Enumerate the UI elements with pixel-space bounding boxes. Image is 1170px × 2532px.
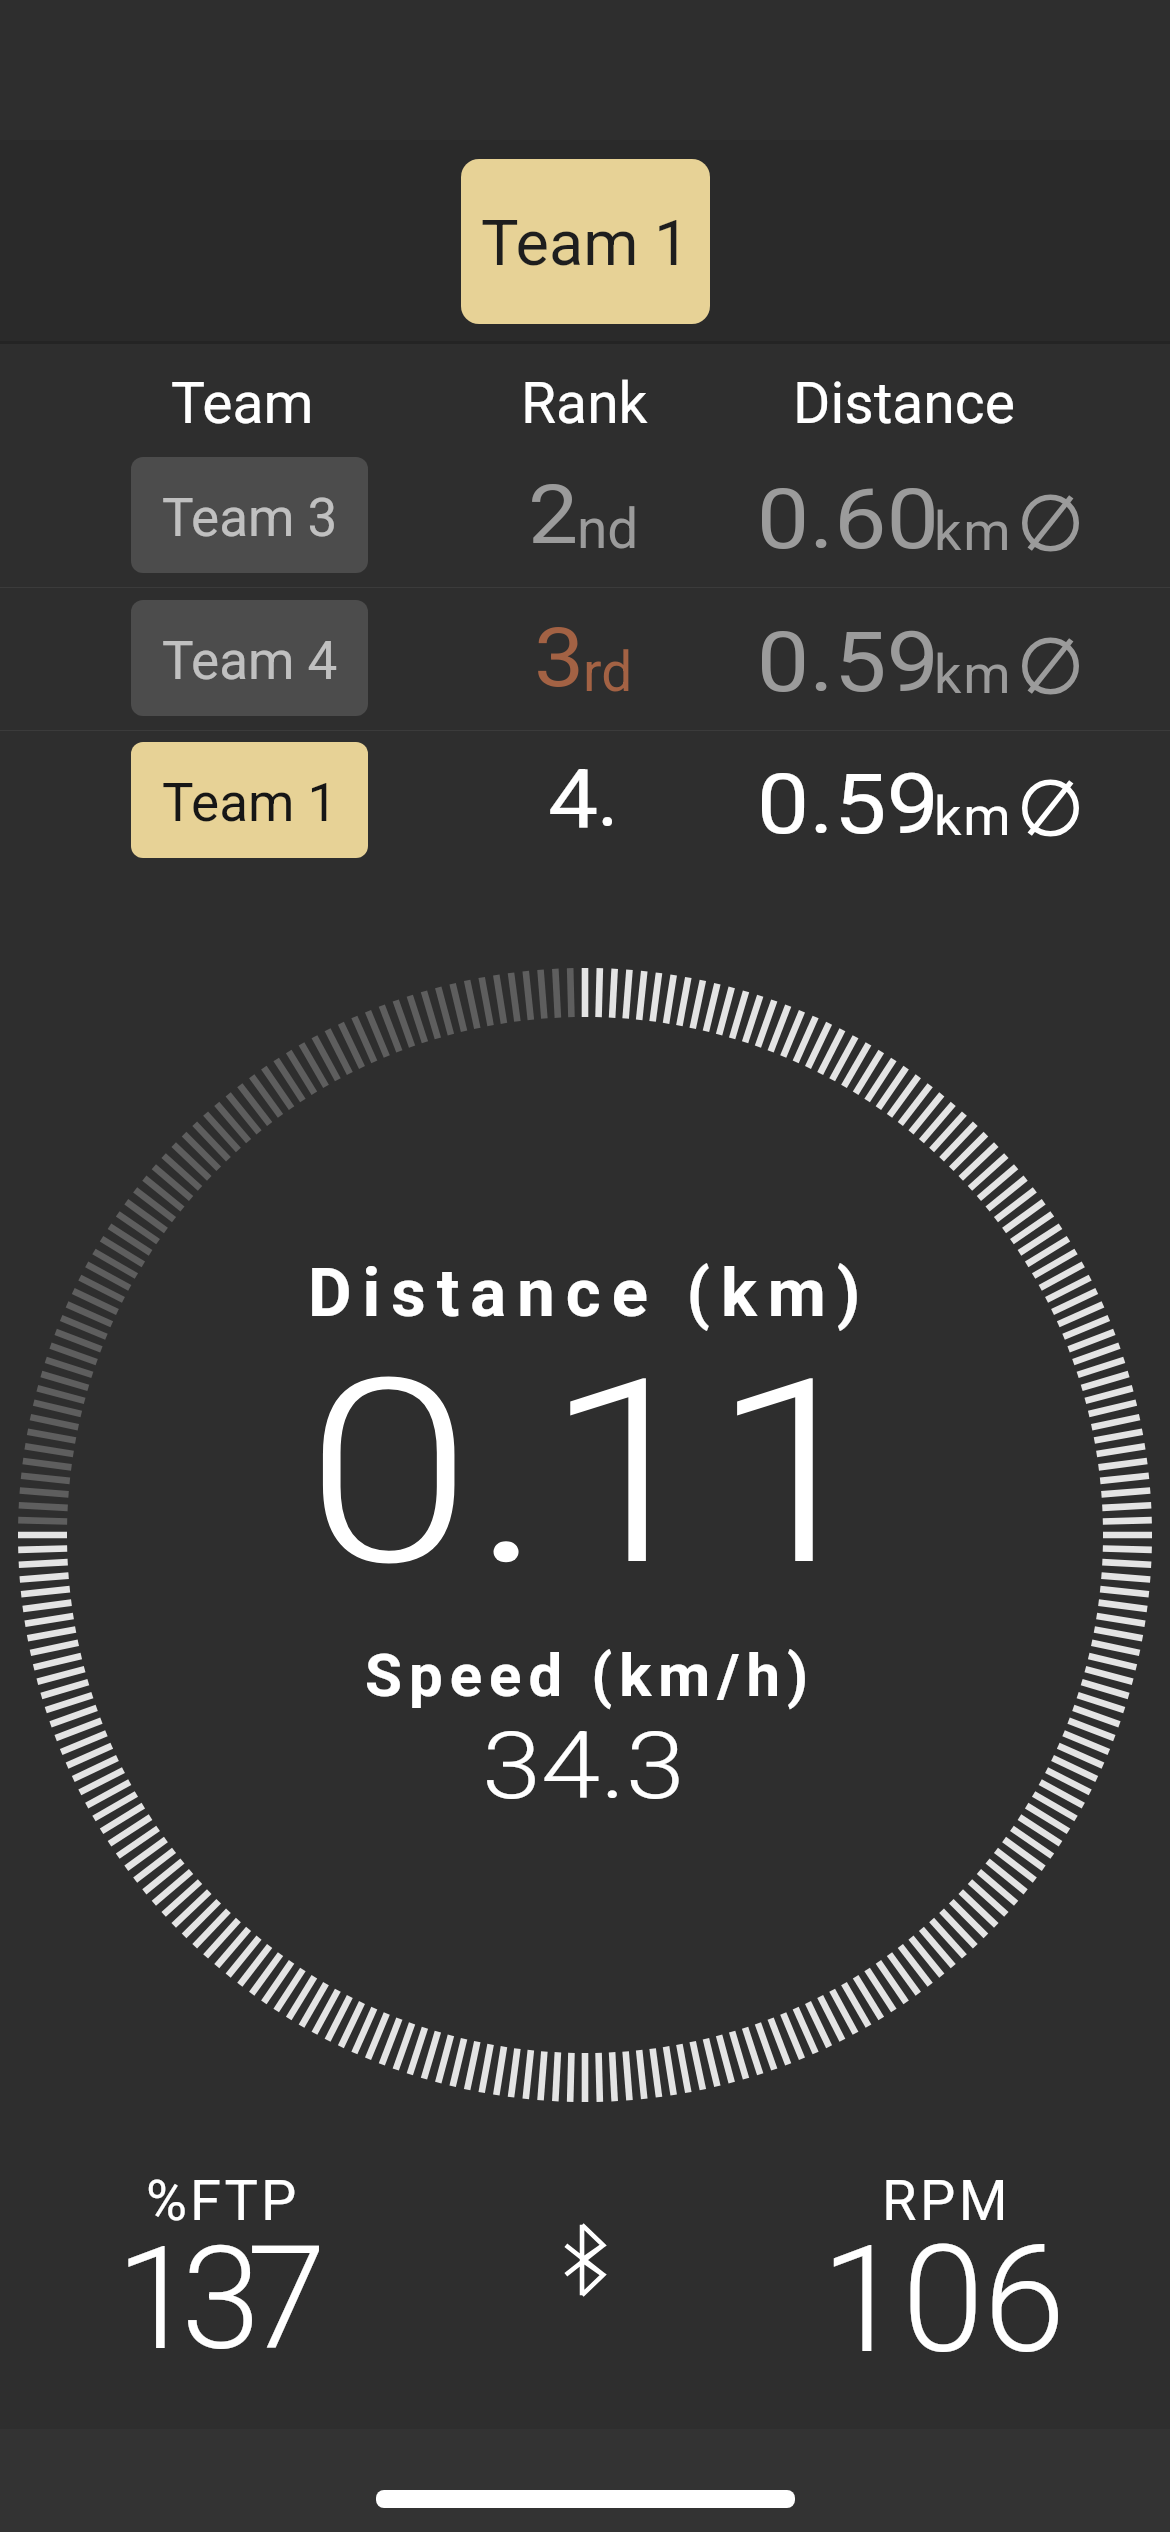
staticText: Team 4 <box>162 630 338 692</box>
staticText: 137 <box>116 2215 312 2383</box>
staticText: Rank <box>521 370 648 437</box>
staticText: 106 <box>821 2214 1065 2387</box>
staticText: 0.60 <box>757 470 939 568</box>
staticText: km <box>934 500 1013 563</box>
button[interactable]: Team 1 <box>131 742 368 858</box>
staticText: km <box>934 643 1013 706</box>
staticText: Speed (km/h) <box>365 1640 816 1710</box>
staticText: 0.59 <box>757 755 939 853</box>
staticText: rd <box>583 640 633 704</box>
staticText: nd <box>577 497 639 561</box>
staticText: 4 <box>548 752 599 848</box>
staticText: %FTP <box>146 2168 300 2234</box>
staticText: . <box>597 750 619 846</box>
staticText: RPM <box>882 2168 1012 2234</box>
staticText: Team <box>171 370 314 437</box>
button[interactable]: Team 1 <box>461 159 710 324</box>
staticText: Team 3 <box>162 487 338 549</box>
staticText: Distance <box>793 370 1015 437</box>
staticText: Distance (km) <box>308 1254 872 1333</box>
staticText: 2 <box>528 467 579 563</box>
staticText: 0.11 <box>305 1323 879 1623</box>
button[interactable]: Team 4 <box>131 600 368 716</box>
staticText: km <box>934 785 1013 848</box>
staticText: Team 1 <box>162 772 338 834</box>
staticText: 34.3 <box>482 1713 686 1821</box>
button[interactable]: Bluetooth connected <box>564 2223 605 2297</box>
staticText: 3 <box>534 610 585 706</box>
staticText: 0.59 <box>757 613 939 711</box>
button[interactable]: Team 3 <box>131 457 368 573</box>
staticText: Team 1 <box>481 207 690 281</box>
